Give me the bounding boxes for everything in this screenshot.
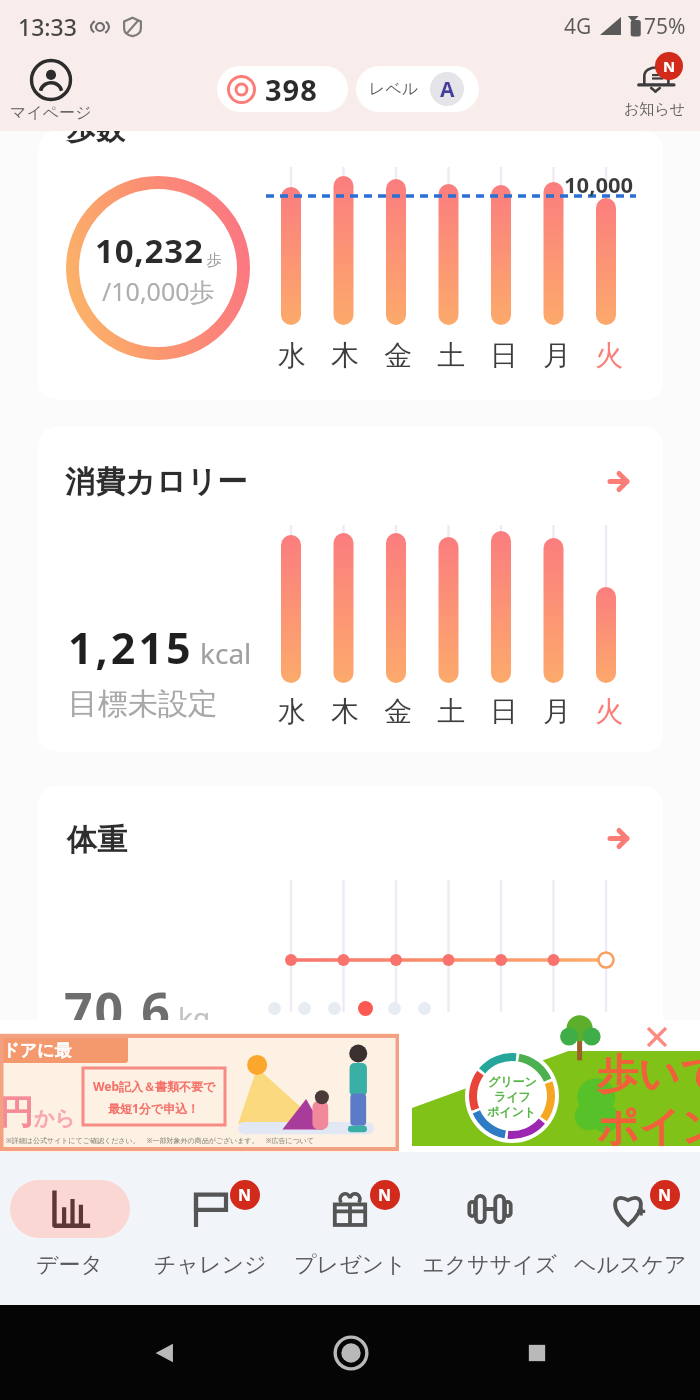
staticText: 398 [265, 70, 318, 109]
button[interactable]: 体重 [38, 786, 663, 1086]
button[interactable]: データ [0, 1152, 140, 1305]
button[interactable]: レベル [356, 66, 479, 112]
staticText: 歩いて [597, 1049, 700, 1101]
staticText: 歩数 [67, 131, 125, 148]
staticText: Web記入＆書類不要で [93, 1078, 216, 1094]
button[interactable]: 消費カロリー [38, 427, 663, 752]
staticText: N [663, 56, 676, 76]
staticText: 体重 [67, 821, 127, 859]
button[interactable]: お知らせ [615, 57, 695, 119]
button[interactable]: Close [645, 1025, 669, 1049]
staticText: 月 [543, 338, 571, 373]
staticText: 目標未設定 [68, 685, 218, 723]
staticText: 10,232 [95, 228, 204, 273]
staticText: マイページ [10, 103, 92, 123]
staticText: データ [36, 1251, 104, 1279]
staticText: 日 [490, 694, 518, 729]
staticText: 75% [644, 12, 686, 41]
staticText: エクササイズ [422, 1251, 558, 1279]
staticText: 1,215 [68, 618, 194, 677]
staticText: 金 [384, 338, 412, 373]
button[interactable]: 詳細 [608, 828, 629, 849]
staticText: 0円 [0, 1088, 34, 1134]
button[interactable]: アウトドアに最適！ [0, 1033, 399, 1152]
button[interactable]: マイページ [6, 58, 96, 123]
staticText: 10,000 [564, 169, 634, 199]
button[interactable]: グリーン [399, 1033, 700, 1152]
button[interactable]: 詳細 [608, 471, 629, 492]
button[interactable]: N [560, 1152, 700, 1305]
button[interactable]: エクササイズ [420, 1152, 560, 1305]
staticText: 4G [564, 12, 592, 41]
staticText: N [658, 1184, 672, 1206]
staticText: 火 [595, 694, 623, 729]
staticText: ※詳細は公式サイトにてご確認ください。 ※一部対象外の商品がございます。 ※広告… [6, 1136, 315, 1146]
staticText: 13:33 [18, 11, 77, 42]
staticText: 金 [384, 694, 412, 729]
staticText: A [440, 75, 455, 104]
staticText: 土 [437, 694, 465, 729]
staticText: ヘルスケア [574, 1251, 687, 1279]
staticText: チャレンジ [154, 1251, 267, 1279]
staticText: ポイン [597, 1102, 700, 1154]
button[interactable]: N [280, 1152, 420, 1305]
staticText: レベル [369, 79, 419, 99]
button[interactable]: 歩数 [38, 131, 663, 400]
staticText: kg [178, 998, 211, 1036]
staticText: 日 [490, 338, 518, 373]
staticText: プレゼント [294, 1251, 407, 1279]
staticText: 消費カロリー [65, 463, 248, 501]
staticText: /10,000歩 [102, 274, 215, 308]
staticText: 火 [595, 338, 623, 373]
staticText: アウトドアに最適！ [0, 1040, 78, 1063]
staticText: から [34, 1106, 75, 1131]
staticText: N [378, 1184, 392, 1206]
staticText: 月 [543, 694, 571, 729]
staticText: kcal [200, 634, 252, 672]
button[interactable]: Recents [520, 1336, 554, 1370]
button[interactable]: 398 [217, 66, 348, 112]
staticText: 木 [331, 694, 359, 729]
staticText: 最短1分で申込！ [108, 1100, 200, 1116]
staticText: 70.6 [64, 976, 172, 1044]
staticText: 歩 [207, 251, 222, 270]
button[interactable]: N [140, 1152, 280, 1305]
staticText: N [238, 1184, 252, 1206]
staticText: 木 [331, 338, 359, 373]
staticText: グリーン [488, 1074, 537, 1089]
staticText: 水 [278, 694, 306, 729]
staticText: お知らせ [624, 100, 686, 119]
button[interactable]: Back [147, 1335, 183, 1371]
staticText: ライフ [494, 1089, 531, 1104]
staticText: 水 [278, 338, 306, 373]
staticText: 土 [437, 338, 465, 373]
button[interactable]: Home [329, 1331, 373, 1375]
staticText: ポイント [487, 1104, 537, 1119]
